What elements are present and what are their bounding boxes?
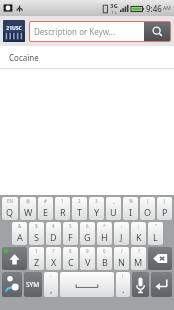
staticText: $ [35, 223, 38, 229]
staticText: Description or Keyw... [34, 26, 116, 37]
button[interactable]: Search [144, 22, 170, 41]
staticText: * [103, 223, 106, 229]
button[interactable]: ) [157, 197, 172, 220]
staticText: N [118, 256, 125, 268]
staticText: 6 [86, 223, 89, 229]
staticText: J [120, 231, 123, 243]
staticText: V [85, 256, 91, 268]
staticText: A [17, 231, 23, 243]
button[interactable]: 3 [89, 197, 104, 220]
button[interactable]: SYM [24, 272, 42, 297]
button[interactable]: _ [106, 197, 121, 220]
staticText: 9:46 [146, 3, 162, 14]
staticText: 7 [52, 248, 55, 254]
staticText: L [153, 231, 158, 243]
button[interactable]: Enter [151, 272, 172, 297]
button[interactable]: 8 [63, 247, 78, 270]
button[interactable]: Shift [2, 247, 27, 270]
staticText: 3G [110, 2, 118, 10]
button[interactable]: @ [20, 197, 36, 220]
button[interactable]: EN [2, 197, 18, 220]
staticText: " [155, 223, 157, 229]
button[interactable]: 7 [46, 247, 61, 270]
button[interactable]: Backspace [148, 247, 172, 270]
button[interactable]: Change language [2, 272, 22, 297]
staticText: ) [164, 198, 166, 204]
staticText: M [134, 256, 143, 268]
button[interactable]: # [38, 197, 53, 220]
staticText: SYM [26, 280, 40, 289]
staticText: G [84, 231, 91, 243]
staticText: 5 [69, 223, 72, 229]
staticText: 1 [35, 248, 38, 254]
button[interactable]: 5 [63, 222, 78, 245]
button[interactable]: ? [131, 247, 146, 270]
staticText: @ [26, 198, 31, 204]
staticText: 8 [69, 248, 72, 254]
button[interactable]: Space [60, 272, 114, 297]
staticText: W [24, 206, 33, 218]
button[interactable]: 1 [29, 247, 44, 270]
button[interactable]: Description or Keyw... [30, 22, 144, 41]
staticText: AM [163, 5, 171, 12]
button[interactable]: ! [116, 272, 130, 297]
staticText: 3 [95, 198, 98, 204]
staticText: ↑↓ [111, 10, 118, 15]
staticText: . [122, 283, 125, 295]
staticText: % [129, 198, 133, 204]
staticText: I [129, 206, 133, 218]
staticText: : [121, 223, 123, 229]
staticText: / [121, 248, 123, 254]
staticText: Z [34, 256, 40, 268]
staticText: D [50, 231, 57, 243]
staticText: - [50, 273, 52, 279]
staticText: 9 [86, 248, 89, 254]
staticText: F [68, 231, 73, 243]
staticText: 21USC [6, 25, 22, 32]
staticText: _ [113, 198, 115, 204]
staticText: P [162, 206, 168, 218]
staticText: C [68, 256, 74, 268]
button[interactable]: Voice input [132, 272, 149, 297]
staticText: E [43, 206, 49, 218]
button[interactable]: ( [140, 197, 155, 220]
button[interactable]: 6 [80, 222, 95, 245]
button[interactable]: 4 [46, 222, 61, 245]
staticText: X [51, 256, 57, 268]
button[interactable]: " [148, 222, 163, 245]
staticText: Y [94, 206, 100, 218]
button[interactable]: 9 [80, 247, 95, 270]
staticText: 4 [52, 223, 55, 229]
staticText: O [144, 206, 152, 218]
button[interactable]: / [114, 247, 129, 270]
staticText: S [34, 231, 39, 243]
staticText: R [60, 206, 66, 218]
button[interactable]: % [123, 197, 138, 220]
button[interactable]: & [12, 222, 27, 245]
staticText: Q [6, 206, 14, 218]
staticText: 1 [61, 198, 64, 204]
staticText: U [110, 206, 117, 218]
button[interactable]: $ [29, 222, 44, 245]
staticText: # [44, 198, 47, 204]
staticText: ; [138, 223, 140, 229]
staticText: Cocaine [9, 52, 39, 63]
button[interactable]: ; [131, 222, 146, 245]
staticText: ! [122, 273, 124, 279]
button[interactable]: 0 [97, 247, 112, 270]
staticText: & [18, 223, 22, 229]
staticText: H [101, 231, 108, 243]
staticText: , [50, 283, 53, 295]
button[interactable]: 1 [55, 197, 70, 220]
staticText: B [102, 256, 108, 268]
button[interactable]: * [97, 222, 112, 245]
button[interactable]: - [44, 272, 58, 297]
staticText: EN [7, 198, 13, 204]
button[interactable]: 2 [72, 197, 87, 220]
staticText: 2 [78, 198, 81, 204]
staticText: ? [138, 248, 140, 254]
staticText: T [77, 206, 83, 218]
button[interactable]: Cocaine [0, 46, 174, 68]
button[interactable]: : [114, 222, 129, 245]
button[interactable]: App icon [3, 20, 25, 42]
